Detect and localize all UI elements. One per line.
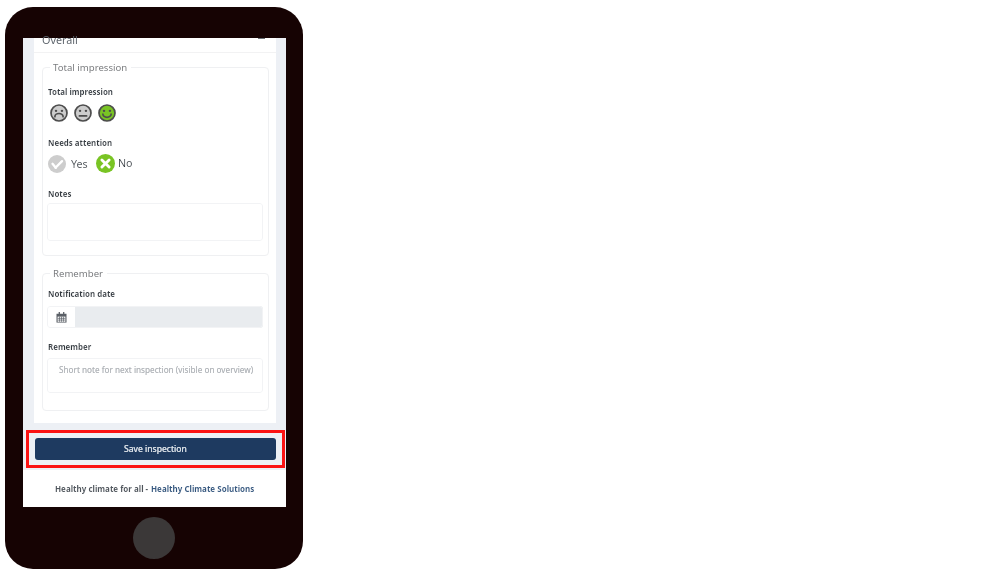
button[interactable]: Healthy Climate Solutions [151,483,255,494]
staticText: Healthy climate for all - [55,483,151,494]
staticText: Notification date [48,289,116,300]
staticText: Remember [53,267,104,280]
button[interactable]: No [96,154,133,173]
button[interactable]: Short note for next inspection (visible … [47,358,263,393]
staticText: Notes [48,189,72,200]
button[interactable]: Notes input [47,203,263,241]
staticText: Remember [48,342,92,353]
staticText: Needs attention [48,138,113,149]
staticText: Short note for next inspection (visible … [59,364,254,375]
button[interactable]: Bad impression [50,104,68,122]
staticText: Total impression [48,87,113,98]
button[interactable]: Save inspection [35,438,276,460]
button[interactable]: Good impression [98,104,116,122]
staticText: Save inspection [124,443,187,455]
button[interactable]: Neutral impression [74,104,92,122]
button[interactable]: Yes [48,155,89,173]
button[interactable]: Pick notification date [47,306,263,328]
staticText: No [118,156,133,171]
staticText: Yes [71,157,88,172]
staticText: Overall [42,32,78,47]
staticText: Total impression [53,61,128,74]
